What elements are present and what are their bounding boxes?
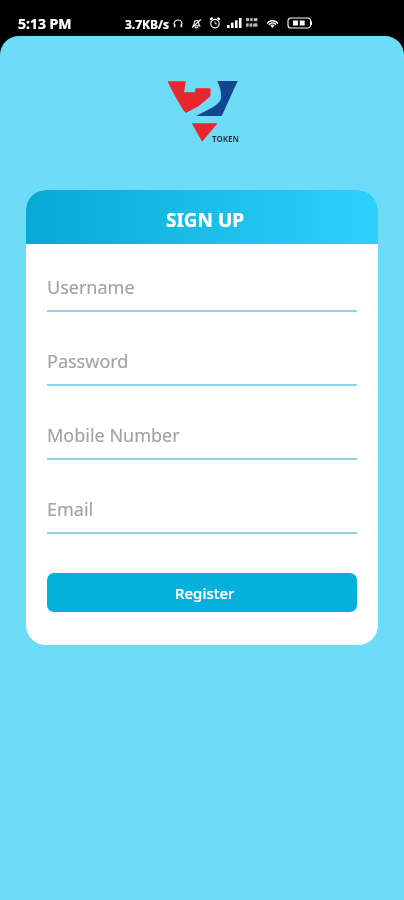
- staticText: TOKEN: [212, 133, 240, 144]
- button[interactable]: Email: [47, 497, 357, 534]
- staticText: Email: [47, 497, 94, 522]
- button[interactable]: Password: [47, 349, 357, 386]
- staticText: Username: [47, 275, 135, 300]
- button[interactable]: Mobile Number: [47, 423, 357, 460]
- staticText: 3.7KB/s: [125, 16, 170, 32]
- staticText: Register: [175, 583, 235, 603]
- button[interactable]: Register: [47, 573, 357, 612]
- staticText: 5:13 PM: [18, 14, 72, 33]
- button[interactable]: Username: [47, 275, 357, 312]
- staticText: Mobile Number: [47, 423, 180, 448]
- staticText: Password: [47, 349, 129, 374]
- staticText: SIGN UP: [166, 207, 245, 233]
